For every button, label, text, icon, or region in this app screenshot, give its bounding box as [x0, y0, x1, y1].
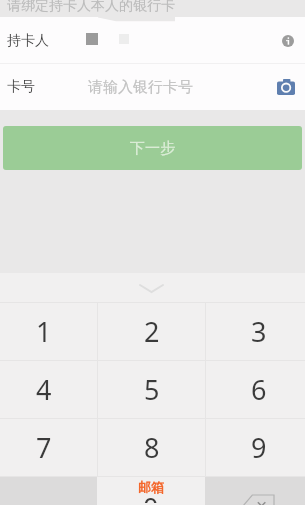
button[interactable]: 8: [98, 419, 205, 476]
button[interactable]: 邮箱: [97, 477, 205, 505]
staticText: 邮箱: [138, 479, 164, 495]
button[interactable]: 2: [98, 303, 205, 360]
staticText: 3: [251, 313, 267, 350]
staticText: 2: [144, 313, 160, 350]
button[interactable]: 5: [98, 361, 205, 418]
staticText: 8: [144, 429, 160, 466]
staticText: 7: [36, 429, 52, 466]
button[interactable]: Hide keyboard: [131, 280, 171, 296]
staticText: 9: [251, 429, 267, 466]
button[interactable]: 7: [0, 419, 97, 476]
button[interactable]: Backspace: [205, 477, 305, 505]
button[interactable]: 9: [206, 419, 305, 476]
button[interactable]: 4: [0, 361, 97, 418]
staticText: 持卡人: [7, 32, 49, 50]
button[interactable]: 下一步: [3, 126, 302, 170]
staticText: 0: [143, 489, 159, 503]
button[interactable]: 6: [206, 361, 305, 418]
staticText: 下一步: [130, 139, 175, 158]
staticText: 请绑定持卡人本人的银行卡: [7, 0, 175, 15]
staticText: 1: [36, 313, 52, 350]
button[interactable]: Scan card: [273, 74, 299, 100]
staticText: 卡号: [7, 78, 35, 96]
button[interactable]: 3: [206, 303, 305, 360]
staticText: 5: [144, 371, 160, 408]
button[interactable]: 1: [0, 303, 97, 360]
staticText: 4: [36, 371, 52, 408]
button[interactable]: 持卡人: [0, 20, 305, 61]
staticText: 请输入银行卡号: [88, 78, 193, 97]
staticText: 6: [251, 371, 267, 408]
button[interactable]: 卡号: [0, 66, 305, 107]
button[interactable]: Info: [275, 28, 301, 54]
